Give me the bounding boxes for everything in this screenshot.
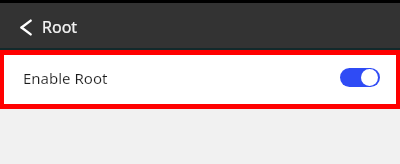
staticText: Enable Root <box>23 68 108 88</box>
button[interactable]: Navigate up <box>0 4 42 48</box>
button[interactable]: Enable Root, on <box>340 68 380 87</box>
button[interactable]: Enable Root <box>4 55 396 104</box>
staticText: Root <box>42 16 78 38</box>
